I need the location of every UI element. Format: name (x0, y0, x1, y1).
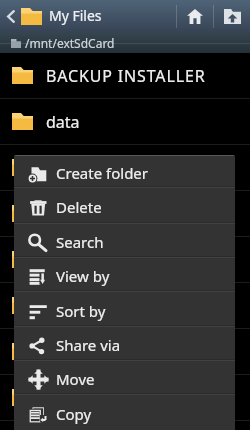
staticText: Create folder (56, 163, 149, 183)
staticText: Copy (56, 404, 92, 424)
staticText: Delete (56, 197, 102, 217)
button[interactable]: View by (14, 258, 235, 292)
button[interactable]: Up one level (214, 0, 250, 33)
staticText: BACKUP INSTALLER (46, 65, 206, 87)
staticText: Share via (56, 335, 121, 355)
staticText: /mnt/extSdCard (25, 35, 115, 51)
staticText: Move (56, 369, 95, 389)
button[interactable] (0, 191, 250, 236)
button[interactable]: Share via (14, 327, 235, 361)
button[interactable] (0, 283, 250, 328)
button[interactable]: /mnt/extSdCard (0, 33, 250, 53)
staticText: data (46, 111, 80, 133)
staticText: My Files (49, 6, 102, 25)
button[interactable]: Sort by (14, 292, 235, 327)
button[interactable]: Back (0, 0, 21, 33)
staticText: Sort by (56, 301, 106, 321)
button[interactable]: Home (177, 0, 213, 33)
button[interactable]: Create folder (14, 155, 235, 188)
button[interactable] (0, 375, 250, 420)
button[interactable]: My Files (21, 0, 176, 33)
button[interactable]: Copy (14, 395, 235, 430)
button[interactable] (0, 237, 250, 282)
button[interactable]: data (0, 99, 250, 144)
button[interactable] (0, 145, 250, 190)
button[interactable]: Search (14, 224, 235, 258)
button[interactable]: BACKUP INSTALLER (0, 53, 250, 98)
staticText: Search (56, 232, 104, 252)
button[interactable] (0, 329, 250, 374)
button[interactable]: Move (14, 361, 235, 395)
staticText: View by (56, 266, 110, 286)
button[interactable]: Delete (14, 188, 235, 224)
